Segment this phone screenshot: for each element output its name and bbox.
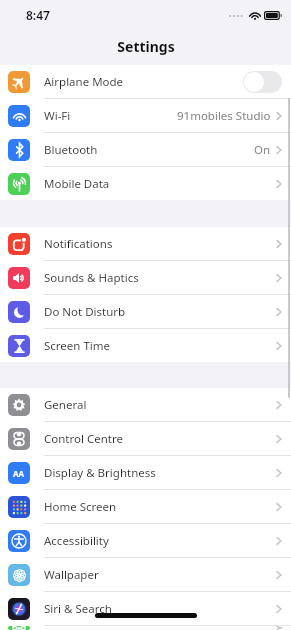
staticText: Notifications <box>44 236 276 252</box>
button[interactable]: Do Not Disturb <box>0 295 291 329</box>
button[interactable]: Bluetooth <box>0 133 291 167</box>
button[interactable]: Face ID & Passcode <box>0 626 291 630</box>
staticText: Bluetooth <box>44 142 254 158</box>
staticText: 8:47 <box>26 7 50 23</box>
staticText: Mobile Data <box>44 176 276 192</box>
button[interactable]: Notifications <box>0 227 291 261</box>
staticText: Accessibility <box>44 533 276 549</box>
button[interactable]: Accessibility <box>0 524 291 558</box>
staticText: 91mobiles Studio <box>177 108 271 124</box>
staticText: Sounds & Haptics <box>44 270 276 286</box>
button[interactable]: Airplane Mode toggle <box>243 71 282 93</box>
button[interactable]: Control Centre <box>0 422 291 456</box>
button[interactable]: Sounds & Haptics <box>0 261 291 295</box>
staticText: AA <box>13 468 25 479</box>
staticText: Do Not Disturb <box>44 304 276 320</box>
button[interactable]: Mobile Data <box>0 167 291 200</box>
button[interactable]: Wi-Fi <box>0 99 291 133</box>
button[interactable]: Screen Time <box>0 329 291 362</box>
staticText: Wi-Fi <box>44 108 177 124</box>
staticText: Airplane Mode <box>44 74 243 90</box>
button[interactable]: General <box>0 388 291 422</box>
button[interactable]: AA <box>0 456 291 490</box>
staticText: Display & Brightness <box>44 465 276 481</box>
button[interactable]: Wallpaper <box>0 558 291 592</box>
staticText: Siri & Search <box>44 601 276 617</box>
button[interactable]: Airplane Mode <box>0 65 291 99</box>
button[interactable]: Siri & Search <box>0 592 291 626</box>
staticText: Screen Time <box>44 338 276 354</box>
button[interactable]: Home Screen <box>0 490 291 524</box>
staticText: Wallpaper <box>44 567 276 583</box>
staticText: Control Centre <box>44 431 276 447</box>
staticText: Home Screen <box>44 499 276 515</box>
staticText: Settings <box>117 37 175 56</box>
staticText: General <box>44 397 276 413</box>
staticText: On <box>254 142 271 158</box>
